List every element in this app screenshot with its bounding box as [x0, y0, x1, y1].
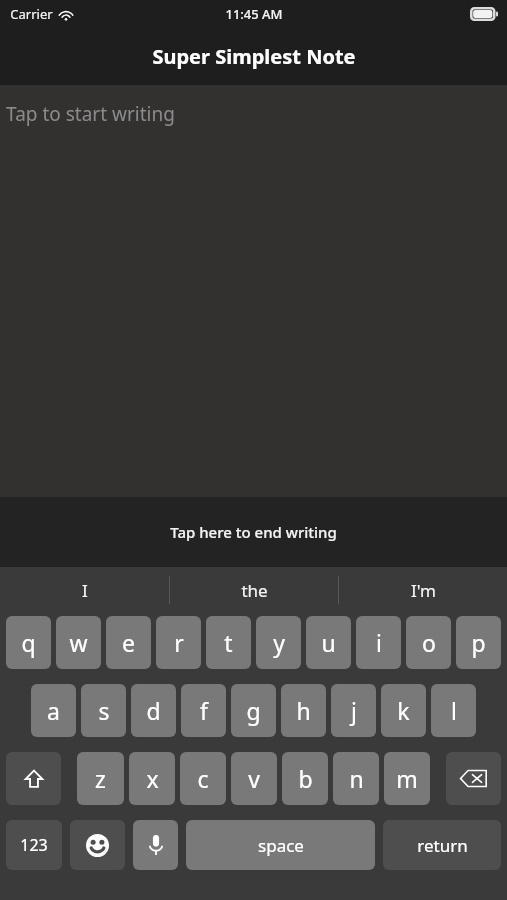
staticText: m	[396, 763, 418, 794]
button[interactable]: y	[256, 616, 301, 669]
button[interactable]: I	[0, 567, 169, 613]
staticText: b	[298, 763, 313, 794]
staticText: q	[21, 627, 36, 658]
staticText: Tap to start writing	[6, 101, 175, 127]
button[interactable]: c	[180, 752, 226, 805]
button[interactable]: g	[231, 684, 276, 737]
button[interactable]: l	[431, 684, 476, 737]
button[interactable]: Tap here to end writing	[0, 497, 507, 567]
button[interactable]: the	[170, 567, 338, 613]
staticText: r	[174, 627, 184, 658]
staticText: 11:45 AM	[225, 5, 283, 23]
staticText: f	[200, 695, 208, 726]
staticText: space	[258, 834, 304, 857]
staticText: n	[349, 763, 364, 794]
staticText: o	[422, 627, 436, 658]
staticText: Carrier	[10, 5, 53, 23]
button[interactable]: Emoji	[70, 820, 125, 870]
button[interactable]: Shift	[6, 752, 61, 805]
staticText: t	[224, 627, 233, 658]
button[interactable]: k	[381, 684, 426, 737]
staticText: i	[376, 627, 382, 658]
staticText: 123	[20, 834, 48, 856]
staticText: j	[351, 695, 357, 726]
button[interactable]: q	[6, 616, 51, 669]
button[interactable]: x	[129, 752, 175, 805]
staticText: h	[296, 695, 311, 726]
staticText: s	[98, 695, 110, 726]
button[interactable]: u	[306, 616, 351, 669]
staticText: Super Simplest Note	[152, 43, 356, 70]
button[interactable]: a	[31, 684, 76, 737]
button[interactable]: d	[131, 684, 176, 737]
staticText: x	[146, 763, 159, 794]
button[interactable]: Dictation	[133, 820, 178, 870]
button[interactable]: z	[77, 752, 124, 805]
button[interactable]: return	[383, 820, 501, 870]
button[interactable]: o	[406, 616, 451, 669]
staticText: p	[471, 627, 486, 658]
staticText: e	[122, 627, 135, 658]
button[interactable]: b	[282, 752, 328, 805]
staticText: k	[397, 695, 410, 726]
button[interactable]: r	[156, 616, 201, 669]
staticText: v	[248, 763, 260, 794]
button[interactable]: space	[186, 820, 375, 870]
staticText: I	[82, 579, 88, 602]
button[interactable]: m	[384, 752, 430, 805]
button[interactable]: s	[81, 684, 126, 737]
button[interactable]: I'm	[339, 567, 507, 613]
staticText: I'm	[411, 579, 436, 602]
button[interactable]: j	[331, 684, 376, 737]
button[interactable]: n	[333, 752, 379, 805]
button[interactable]: t	[206, 616, 251, 669]
button[interactable]: v	[231, 752, 277, 805]
staticText: a	[47, 695, 60, 726]
staticText: d	[146, 695, 161, 726]
staticText: l	[451, 695, 457, 726]
staticText: g	[246, 695, 261, 726]
staticText: c	[197, 763, 209, 794]
staticText: the	[241, 579, 268, 602]
button[interactable]: 123	[6, 820, 62, 870]
staticText: y	[273, 627, 285, 658]
staticText: u	[321, 627, 336, 658]
button[interactable]: f	[181, 684, 226, 737]
button[interactable]: Tap to start writing	[0, 85, 507, 497]
staticText: z	[95, 763, 106, 794]
button[interactable]: h	[281, 684, 326, 737]
button[interactable]: e	[106, 616, 151, 669]
button[interactable]: w	[56, 616, 101, 669]
staticText: return	[417, 834, 468, 857]
button[interactable]: Backspace	[446, 752, 501, 805]
button[interactable]: i	[356, 616, 401, 669]
staticText: Tap here to end writing	[170, 522, 337, 542]
staticText: w	[69, 627, 88, 658]
button[interactable]: p	[456, 616, 501, 669]
